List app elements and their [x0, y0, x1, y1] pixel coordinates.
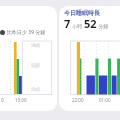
staticText: 01:00 — [99, 97, 111, 103]
staticText: 深眠 — [31, 87, 40, 93]
staticText: 22:00 — [72, 97, 84, 103]
staticText: 清醒 — [31, 63, 40, 69]
staticText: 淺眠 — [31, 43, 40, 49]
staticText: 0 — [1, 97, 4, 103]
staticText: 52 — [84, 16, 97, 31]
button[interactable] — [59, 6, 120, 111]
staticText: 比昨日少 39 分鐘 — [7, 29, 46, 36]
staticText: 分鐘 — [97, 23, 109, 30]
button[interactable] — [0, 6, 57, 111]
staticText: 今日睡眠時長 — [64, 9, 100, 17]
staticText: 15:00 — [15, 97, 27, 103]
staticText: 小時 — [71, 23, 84, 30]
staticText: 7 — [64, 16, 71, 31]
